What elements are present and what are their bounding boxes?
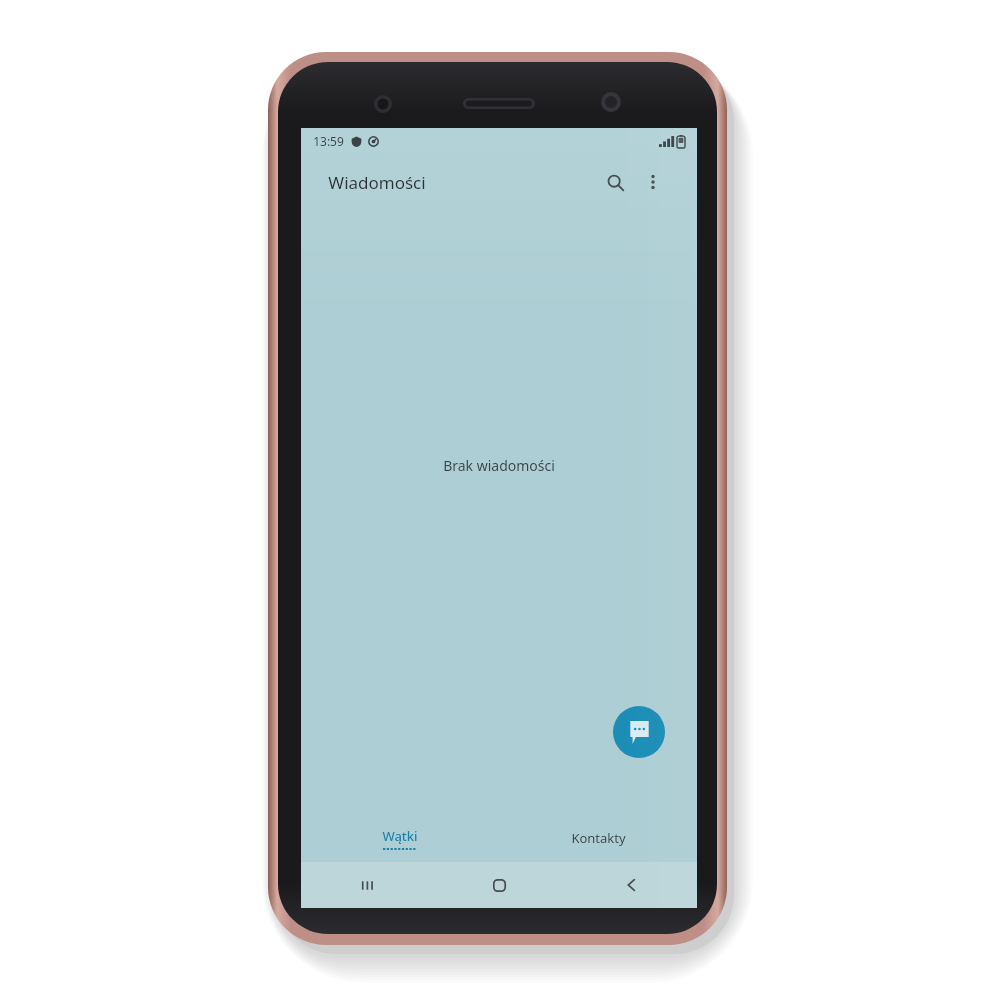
button[interactable]: Ostatnie [301,862,433,908]
button[interactable]: Więcej opcji [635,164,671,200]
staticText: Brak wiadomości [443,456,555,475]
button[interactable]: Nowa wiadomość [613,706,665,758]
staticText: Wiadomości [328,171,426,194]
staticText: 13:59 [313,133,344,149]
button[interactable]: Ekran główny [433,862,565,908]
button[interactable]: Kontakty [499,814,697,862]
staticText: Wątki [382,827,418,845]
button[interactable]: Wątki [301,814,499,862]
button[interactable]: Wstecz [565,862,697,908]
button[interactable]: Szukaj [597,164,633,200]
staticText: Kontakty [571,829,626,847]
